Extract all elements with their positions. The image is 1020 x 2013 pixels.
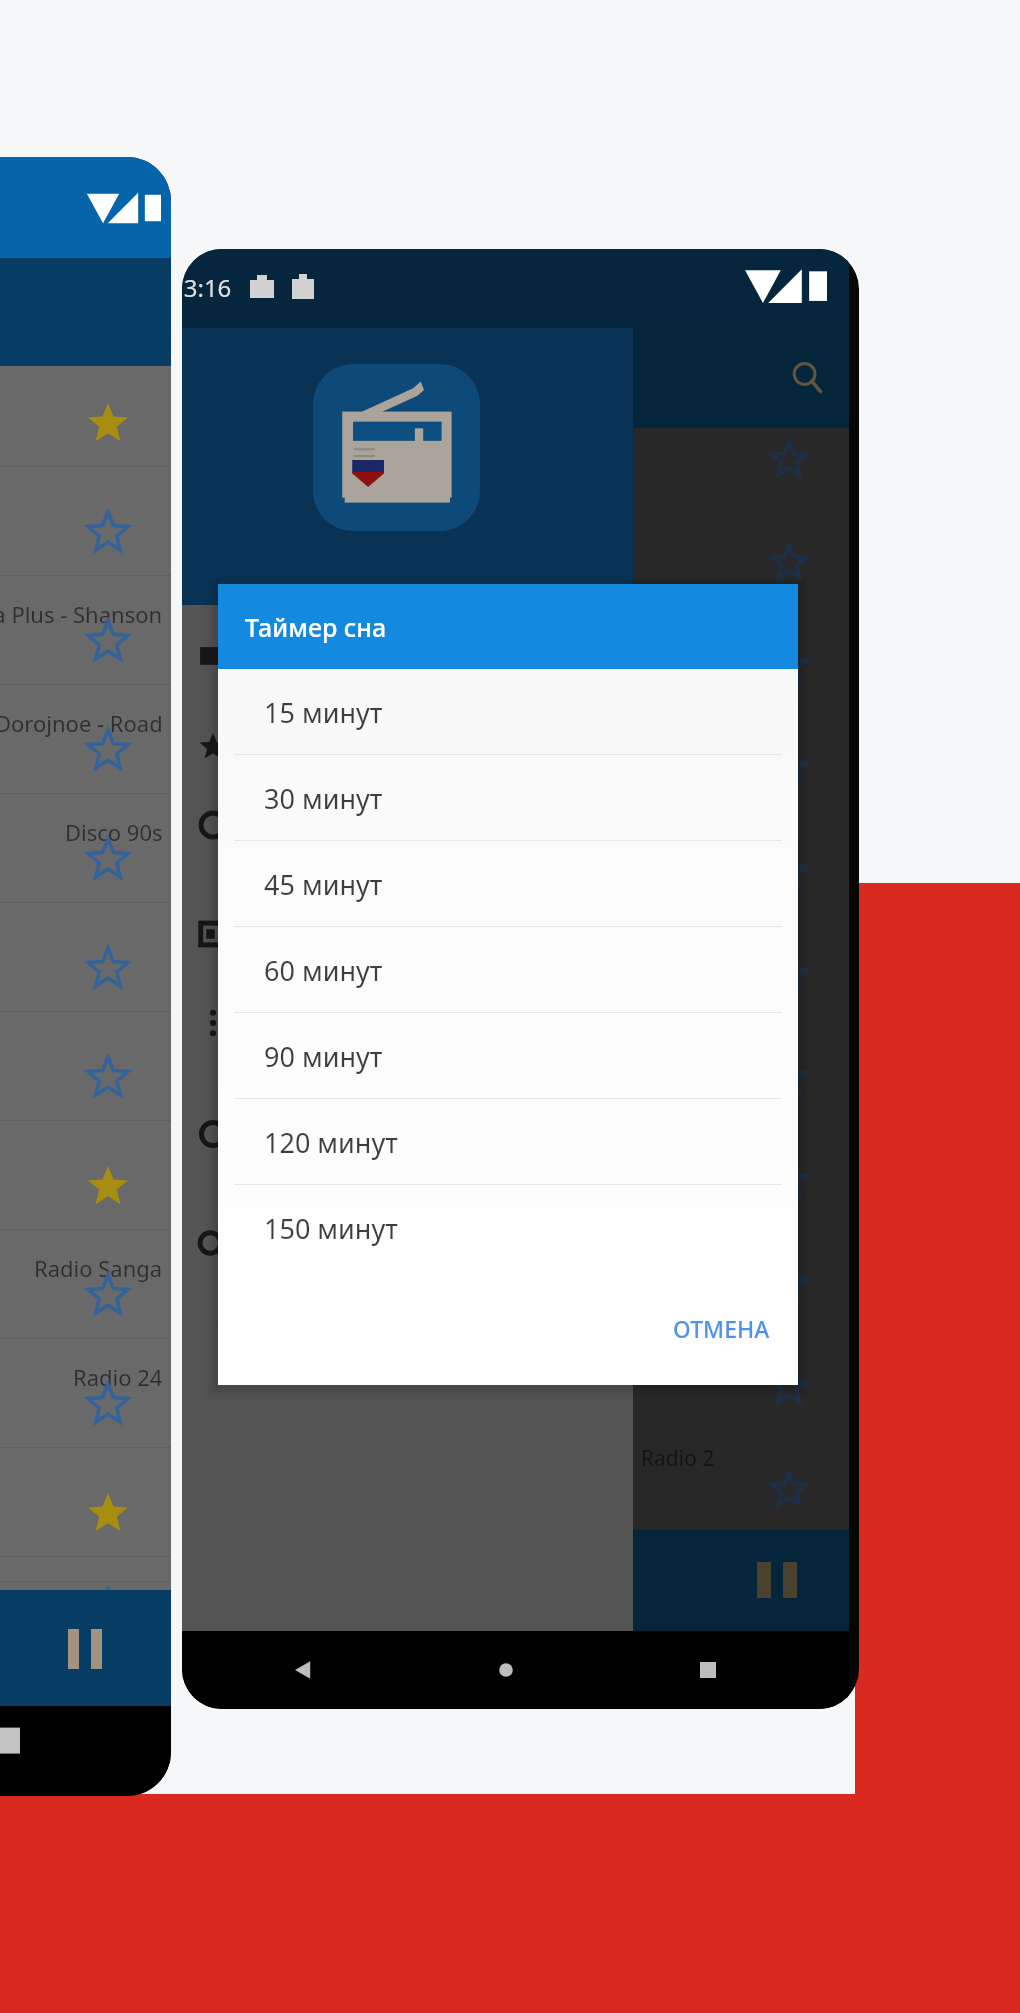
button[interactable]: Dorojnoe - Road [0, 685, 171, 794]
button[interactable]: Back [283, 1650, 323, 1690]
staticText: 45 минут [264, 866, 383, 903]
button[interactable]: Disco 90s [0, 794, 171, 903]
button[interactable] [182, 717, 302, 777]
staticText: 60 минут [264, 952, 383, 989]
staticText: Radio Sanga [34, 1253, 163, 1283]
staticText: 30 минут [264, 780, 383, 817]
button[interactable] [633, 408, 849, 511]
button[interactable] [0, 1448, 171, 1557]
button[interactable] [633, 1541, 849, 1611]
button[interactable]: 90 минут [218, 1013, 798, 1099]
button[interactable]: 15 минут [218, 669, 798, 755]
staticText: 120 минут [264, 1124, 398, 1161]
button[interactable] [0, 1121, 171, 1230]
button[interactable] [633, 820, 849, 923]
button[interactable]: Radio Y [633, 1232, 849, 1335]
staticText: 15 минут [264, 694, 383, 731]
button[interactable] [633, 614, 849, 717]
button[interactable] [182, 904, 302, 964]
button[interactable] [633, 511, 849, 614]
staticText: Radio 2 [641, 1444, 715, 1473]
button[interactable] [633, 1335, 849, 1438]
staticText: Europa Plus - Shanson [0, 599, 163, 629]
button[interactable]: 120 минут [218, 1099, 798, 1185]
button[interactable]: 30 минут [218, 755, 798, 841]
button[interactable] [633, 923, 849, 1026]
button[interactable] [182, 1213, 302, 1273]
button[interactable]: Radio 2 [633, 1438, 849, 1541]
button[interactable] [182, 628, 302, 688]
staticText: 90 минут [264, 1038, 383, 1075]
button[interactable]: 45 минут [218, 841, 798, 927]
staticText: 13:16 [182, 271, 232, 304]
button[interactable] [182, 1104, 302, 1164]
button[interactable]: Europa Plus - Shanson [0, 576, 171, 685]
button[interactable] [182, 795, 302, 855]
button[interactable] [633, 1129, 849, 1232]
button[interactable]: Home [486, 1650, 526, 1690]
staticText: 150 минут [264, 1210, 398, 1247]
button[interactable] [633, 1026, 849, 1129]
button[interactable]: ОТМЕНА [645, 1297, 798, 1360]
button[interactable]: Radio 24 [0, 1339, 171, 1448]
staticText: Таймер сна [245, 610, 387, 644]
button[interactable] [0, 467, 171, 576]
staticText: Radio 24 [73, 1362, 163, 1392]
button[interactable]: Radio Sanga [0, 1230, 171, 1339]
staticText: ОТМЕНА [673, 1313, 770, 1344]
button[interactable] [0, 1012, 171, 1121]
staticText: Disco 90s [65, 817, 163, 847]
button[interactable] [633, 717, 849, 820]
button[interactable]: Search [787, 358, 827, 398]
button[interactable] [0, 903, 171, 1012]
button[interactable]: Recents [688, 1650, 728, 1690]
staticText: Dorojnoe - Road [0, 708, 163, 738]
button[interactable] [0, 358, 171, 467]
button[interactable]: 60 минут [218, 927, 798, 1013]
button[interactable] [182, 993, 302, 1053]
button[interactable]: 150 минут [218, 1185, 798, 1271]
